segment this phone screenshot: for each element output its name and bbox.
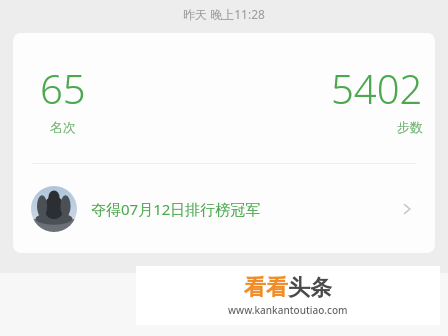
staticText: 夺得07月12日排行榜冠军 bbox=[91, 199, 397, 219]
staticText: 看看 bbox=[244, 274, 288, 302]
staticText: 名次 bbox=[50, 119, 76, 135]
other: 查看详情 bbox=[397, 199, 417, 219]
staticText: 昨天 晚上11:28 bbox=[183, 6, 265, 22]
staticText: 头条 bbox=[288, 274, 332, 302]
button[interactable]: 夺得07月12日排行榜冠军 bbox=[13, 164, 435, 253]
staticText: 步数 bbox=[397, 119, 423, 135]
staticText: www.kankantoutiao.com bbox=[228, 303, 348, 317]
staticText: 5402 bbox=[331, 61, 423, 115]
staticText: 65 bbox=[40, 61, 86, 115]
